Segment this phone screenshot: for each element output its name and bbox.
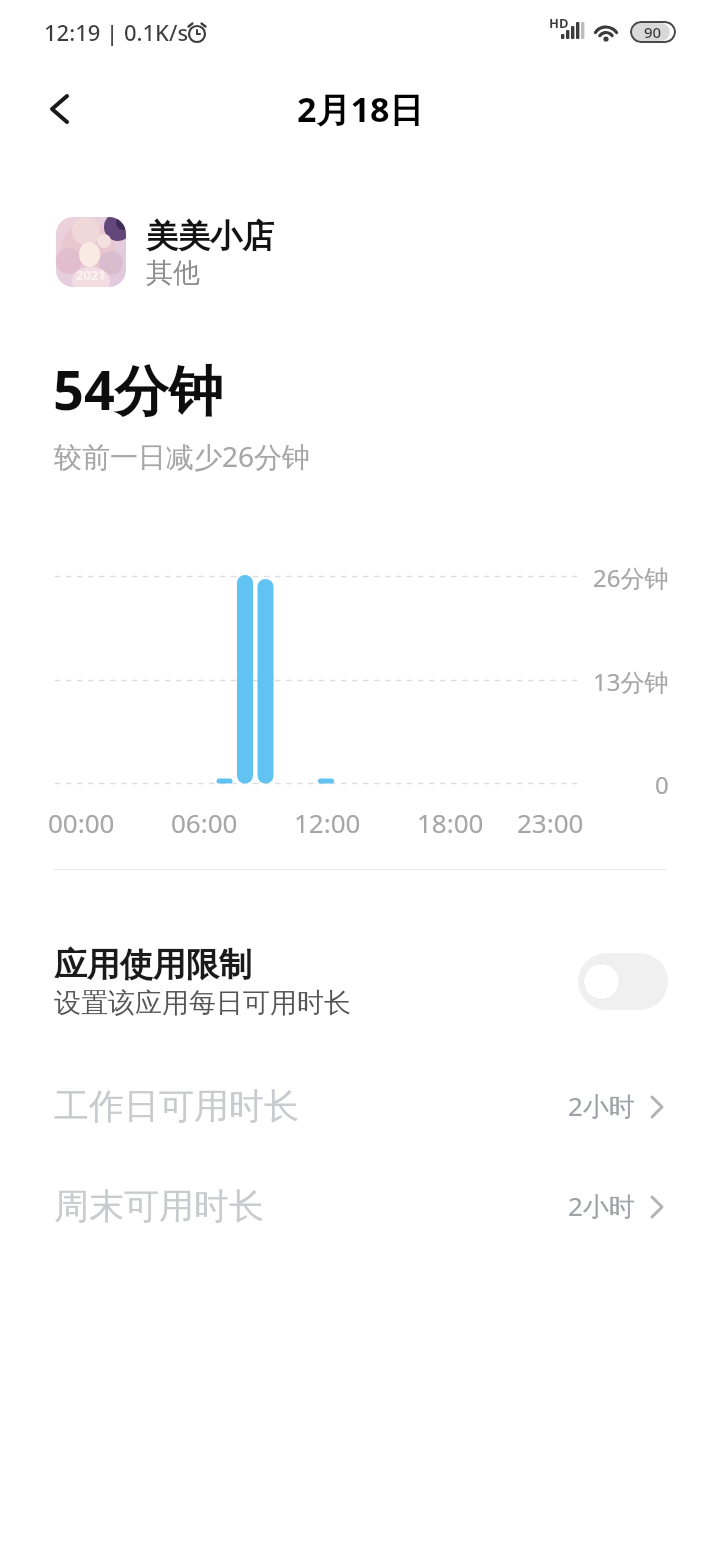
staticText: 2小时 [568, 1188, 635, 1224]
button[interactable] [578, 953, 668, 1010]
button[interactable]: 工作日可用时长 [0, 1078, 720, 1134]
staticText: 美美小店 [146, 216, 274, 252]
staticText: 00:00 [48, 805, 115, 840]
staticText: 06:00 [171, 805, 238, 840]
staticText: 54分钟 [53, 352, 223, 424]
staticText: 0 [655, 768, 669, 801]
staticText: 23:00 [517, 805, 584, 840]
staticText: 2021 [76, 266, 106, 284]
staticText: 13分钟 [593, 665, 669, 698]
staticText: 90 [644, 22, 662, 42]
staticText: 26分钟 [593, 561, 669, 594]
staticText: 12:00 [294, 805, 361, 840]
button[interactable]: 周末可用时长 [0, 1178, 720, 1234]
staticText: 工作日可用时长 [54, 1084, 299, 1128]
staticText: 其他 [146, 256, 200, 290]
button[interactable] [30, 78, 90, 138]
staticText: 2小时 [568, 1088, 635, 1124]
staticText: 18:00 [417, 805, 484, 840]
staticText: 设置该应用每日可用时长 [54, 986, 351, 1020]
staticText: 周末可用时长 [54, 1184, 264, 1228]
staticText: 应用使用限制 [54, 944, 252, 984]
staticText: 较前一日减少26分钟 [54, 437, 311, 475]
staticText: HD [549, 14, 569, 32]
staticText: 12:19 | 0.1K/s [44, 17, 189, 47]
staticText: 2月18日 [297, 86, 424, 132]
